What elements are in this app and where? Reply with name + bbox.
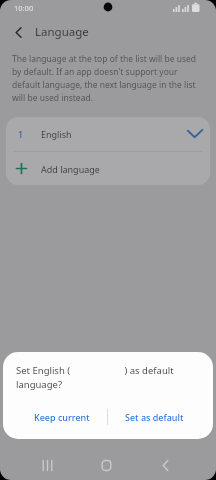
staticText: Add language xyxy=(41,163,100,175)
button[interactable] xyxy=(7,21,29,43)
staticText: English xyxy=(41,128,72,140)
button[interactable]: 1 xyxy=(6,117,210,151)
button[interactable]: Set as default xyxy=(108,400,200,434)
staticText: The language at the top of the list will… xyxy=(12,53,197,104)
staticText: Set English ( ) as default language? xyxy=(16,364,174,390)
staticText: 1 xyxy=(18,128,24,140)
button[interactable] xyxy=(25,440,69,480)
staticText: Set as default xyxy=(125,411,184,423)
staticText: Keep current xyxy=(34,411,90,423)
staticText: 10:00 xyxy=(14,3,34,13)
staticText: Language xyxy=(35,24,89,40)
button[interactable]: Keep current xyxy=(16,400,107,434)
button[interactable] xyxy=(84,440,128,480)
button[interactable]: Add language xyxy=(6,152,210,185)
button[interactable] xyxy=(143,440,187,480)
